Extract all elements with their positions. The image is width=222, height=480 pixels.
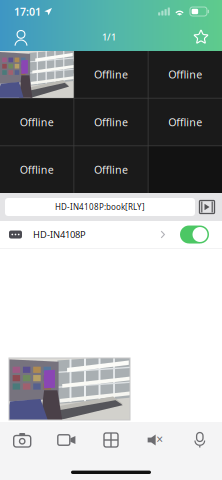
button[interactable]: Live camera preview (9, 358, 130, 420)
staticText: Offline (168, 67, 202, 81)
staticText: Offline (20, 162, 54, 177)
staticText: HD-IN4108P (33, 228, 86, 241)
button[interactable]: Snapshot (0, 422, 44, 458)
button[interactable]: Favourites (180, 23, 222, 51)
staticText: Offline (94, 67, 128, 81)
button[interactable]: HD-IN4108P:book[RLY] (5, 198, 195, 216)
button[interactable]: Talk (178, 422, 222, 458)
staticText: HD-IN4108P:book[RLY] (55, 202, 145, 212)
staticText: Offline (20, 115, 54, 129)
staticText: × (156, 431, 163, 447)
staticText: 1/1 (102, 31, 116, 43)
staticText: Offline (94, 162, 128, 177)
staticText: Offline (94, 115, 128, 129)
button[interactable]: Split layout (89, 422, 133, 458)
button[interactable]: Account (0, 23, 42, 51)
button[interactable]: Mute (133, 422, 178, 458)
staticText: 17:01 (14, 4, 41, 19)
button[interactable]: HD-IN4108P (0, 221, 222, 248)
button[interactable]: Playback (195, 196, 219, 218)
staticText: Offline (168, 115, 202, 129)
button[interactable]: Record (44, 422, 89, 458)
